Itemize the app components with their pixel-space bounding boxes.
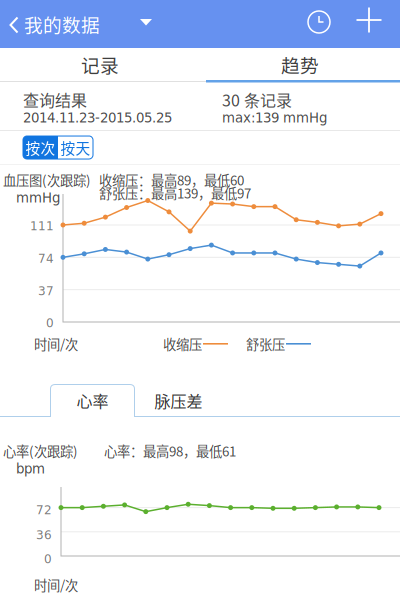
button[interactable]: History (299, 2, 339, 42)
staticText: 36 (36, 528, 52, 542)
staticText: 脉压差 (154, 389, 202, 412)
staticText: 30 条记录 (222, 88, 292, 111)
button[interactable]: 按次 (23, 136, 58, 159)
staticText: 记录 (81, 51, 119, 78)
staticText: 心率：最高98，最低61 (104, 441, 236, 460)
staticText: 舒张压 (246, 334, 285, 353)
staticText: 心率(次跟踪) (3, 441, 78, 460)
staticText: 0 (46, 316, 54, 330)
button[interactable]: 按天 (58, 136, 93, 159)
staticText: 74 (38, 251, 54, 265)
staticText: 收缩压：最高89，最低60 (99, 170, 244, 189)
staticText: 趋势 (281, 51, 319, 78)
staticText: 我的数据 (24, 10, 100, 37)
button[interactable]: 趋势 (200, 48, 400, 81)
button[interactable]: Select data type (128, 7, 164, 38)
staticText: 111 (30, 219, 54, 233)
button[interactable]: 心率 (50, 384, 135, 417)
button[interactable]: 记录 (0, 48, 200, 81)
button[interactable]: Add (349, 0, 389, 40)
button[interactable]: 我的数据 (0, 5, 106, 45)
staticText: bpm (16, 461, 45, 476)
staticText: mmHg (16, 190, 60, 205)
staticText: max:139 mmHg (222, 110, 327, 125)
staticText: 按天 (60, 137, 90, 158)
staticText: 心率 (76, 389, 108, 412)
staticText: 时间/次 (34, 334, 78, 353)
staticText: 0 (44, 552, 52, 566)
staticText: 2014.11.23-2015.05.25 (23, 110, 172, 125)
staticText: 37 (38, 284, 54, 298)
staticText: 舒张压：最高139，最低97 (99, 183, 251, 202)
staticText: 查询结果 (23, 88, 87, 111)
button[interactable]: 脉压差 (136, 384, 221, 417)
staticText: 血压图(次跟踪) (3, 170, 91, 189)
staticText: 时间/次 (34, 575, 78, 594)
staticText: 72 (36, 503, 52, 517)
staticText: 收缩压 (163, 334, 202, 353)
staticText: 按次 (25, 137, 55, 158)
